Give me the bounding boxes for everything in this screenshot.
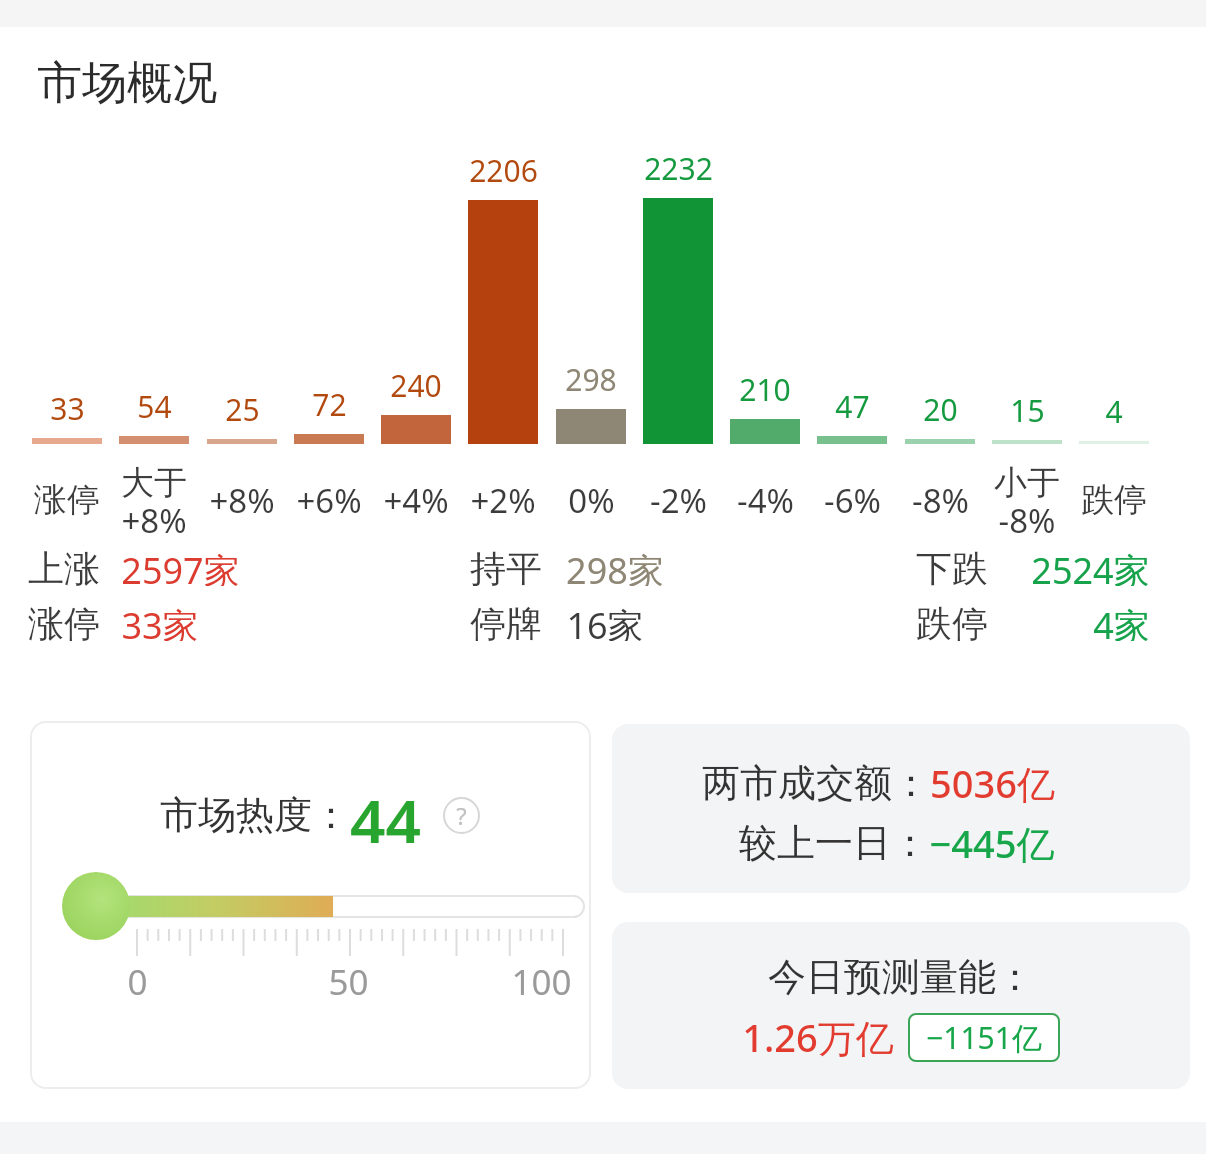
staticText: 2206 — [469, 150, 538, 186]
staticText: ? — [456, 799, 467, 832]
staticText: +2% — [470, 478, 536, 523]
staticText: 5036亿 — [930, 757, 1055, 809]
staticText: -8% — [912, 478, 969, 523]
staticText: +6% — [296, 478, 362, 523]
staticText: 72 — [312, 384, 347, 420]
staticText: 298 — [565, 359, 617, 395]
staticText: +4% — [383, 478, 449, 523]
staticText: 15 — [1010, 390, 1045, 426]
staticText: 0 — [127, 958, 148, 1004]
button[interactable] — [612, 724, 1190, 893]
staticText: 两市成交额： — [702, 759, 930, 807]
staticText: 跌停 — [1081, 479, 1147, 521]
staticText: 小于 -8% — [994, 462, 1060, 538]
staticText: −445亿 — [929, 817, 1055, 869]
staticText: 33家 — [121, 601, 199, 641]
staticText: 4 — [1105, 391, 1123, 427]
staticText: 0% — [568, 478, 615, 523]
staticText: 25 — [225, 389, 260, 425]
staticText: -4% — [737, 478, 794, 523]
button[interactable] — [612, 922, 1190, 1089]
staticText: 较上一日： — [739, 819, 929, 867]
staticText: 市场热度： — [160, 791, 350, 839]
staticText: -2% — [650, 478, 707, 523]
staticText: 100 — [511, 958, 572, 1004]
staticText: 20 — [923, 389, 958, 425]
staticText: 2524家 — [1031, 546, 1150, 586]
staticText: 240 — [390, 365, 442, 401]
staticText: 跌停 — [916, 601, 988, 641]
staticText: 54 — [137, 386, 172, 422]
staticText: 下跌 — [916, 546, 988, 586]
staticText: 涨停 — [28, 601, 100, 641]
staticText: 涨停 — [34, 479, 100, 521]
staticText: -6% — [824, 478, 881, 523]
staticText: 47 — [835, 386, 870, 422]
staticText: 2597家 — [121, 546, 240, 586]
button[interactable] — [30, 721, 591, 1089]
staticText: 持平 — [470, 546, 542, 586]
staticText: 2232 — [644, 148, 713, 184]
staticText: 33 — [50, 388, 85, 424]
staticText: −1151亿 — [926, 1017, 1042, 1058]
staticText: 今日预测量能： — [768, 953, 1034, 1001]
staticText: +8% — [209, 478, 275, 523]
button[interactable]: ? — [443, 797, 480, 834]
staticText: 上涨 — [28, 546, 100, 586]
staticText: 市场概况 — [37, 55, 217, 112]
staticText: 16家 — [566, 601, 644, 641]
staticText: 停牌 — [470, 601, 542, 641]
staticText: 大于 +8% — [121, 462, 187, 538]
staticText: 44 — [350, 779, 421, 843]
staticText: 4家 — [1093, 601, 1150, 641]
staticText: 50 — [328, 958, 369, 1004]
staticText: 1.26万亿 — [742, 1011, 894, 1063]
staticText: 210 — [739, 369, 791, 405]
staticText: 298家 — [566, 546, 664, 586]
